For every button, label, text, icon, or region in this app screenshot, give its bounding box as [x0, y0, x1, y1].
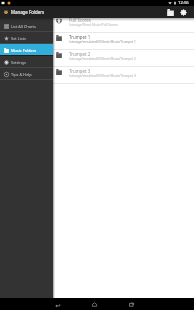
button[interactable]: New folder: [165, 7, 176, 18]
staticText: Music Folders: [11, 48, 37, 53]
button[interactable]: Music Folders: [0, 44, 53, 56]
button[interactable]: Tips & Help: [0, 68, 53, 80]
button[interactable]: Back: [51, 298, 63, 310]
staticText: /storage/emulated/0/Sheet Music/Trumpet …: [69, 40, 136, 44]
staticText: /storage/Sheet Music/Full Scores: [69, 23, 118, 27]
staticText: List All Charts: [11, 24, 36, 29]
button[interactable]: Settings: [178, 7, 189, 18]
staticText: Full Scores: [69, 17, 91, 23]
staticText: Set Lists: [11, 36, 26, 41]
button[interactable]: Full Scores: [53, 16, 194, 33]
staticText: Trumpet 2: [69, 51, 91, 57]
staticText: Trumpet 3: [69, 68, 91, 74]
button[interactable]: Trumpet 2: [53, 50, 194, 67]
staticText: Manage Folders: [11, 9, 45, 15]
button[interactable]: Trumpet 3: [53, 67, 194, 84]
staticText: /storage/emulated/0/Sheet Music/Trumpet …: [69, 57, 136, 61]
button[interactable]: Home: [88, 298, 100, 310]
button[interactable]: Recent apps: [125, 298, 137, 310]
button[interactable]: Trumpet 1: [53, 33, 194, 50]
button[interactable]: Settings: [0, 56, 53, 68]
button[interactable]: Set Lists: [0, 32, 53, 44]
staticText: Trumpet 1: [69, 34, 91, 40]
staticText: Settings: [11, 60, 26, 65]
staticText: /storage/emulated/0/Sheet Music/Trumpet …: [69, 74, 136, 78]
button[interactable]: List All Charts: [0, 20, 53, 32]
staticText: Tips & Help: [11, 72, 32, 77]
staticText: 12:56: [178, 0, 189, 6]
